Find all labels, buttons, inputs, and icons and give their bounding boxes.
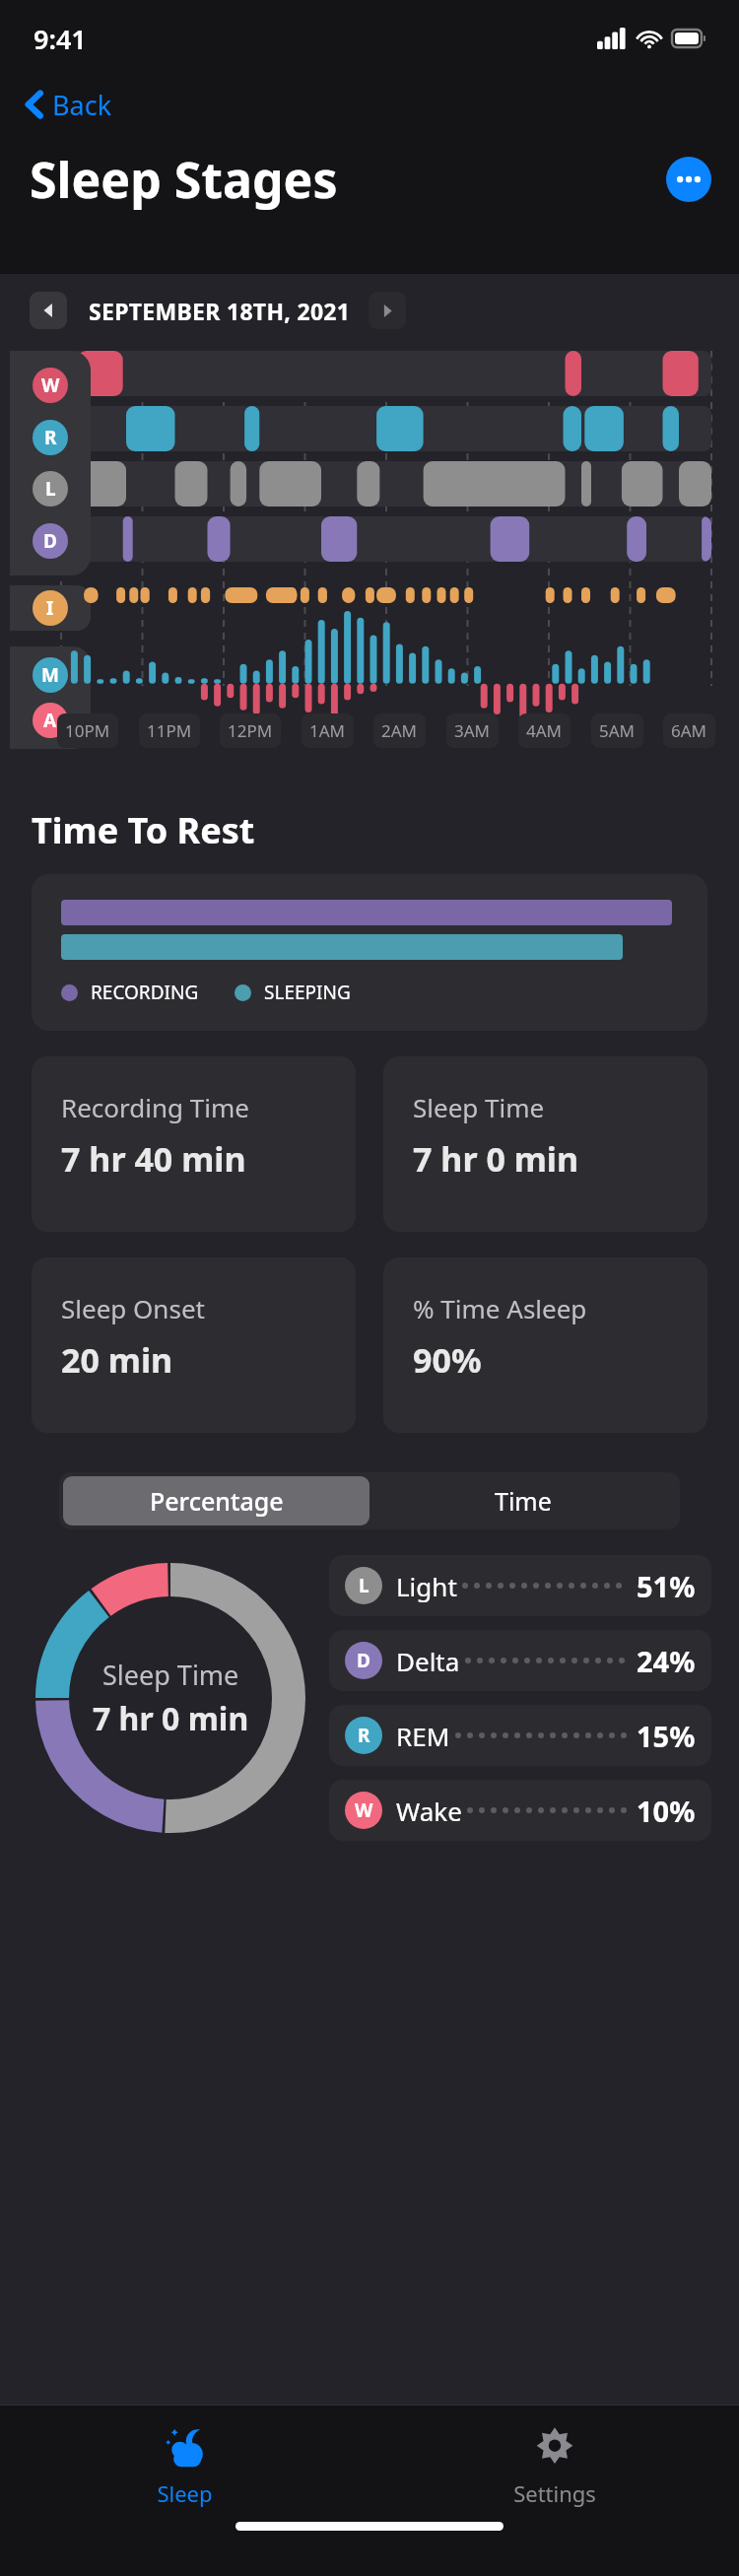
staticText: RECORDING <box>91 980 199 1005</box>
button[interactable]: Sleep Time <box>383 1056 707 1232</box>
button[interactable]: More options <box>666 157 711 202</box>
staticText: Time To Rest <box>32 806 255 854</box>
staticText: L <box>359 1573 369 1598</box>
button[interactable]: Previous day <box>30 292 67 329</box>
button[interactable]: Sleep Onset <box>32 1257 356 1433</box>
button[interactable]: Settings <box>369 2406 739 2522</box>
staticText: SEPTEMBER 18TH, 2021 <box>89 296 351 326</box>
button[interactable]: W <box>329 1780 711 1841</box>
button[interactable]: D <box>329 1630 711 1691</box>
staticText: Wake <box>396 1794 462 1828</box>
staticText: R <box>358 1723 370 1748</box>
staticText: Recording Time <box>61 1090 249 1124</box>
staticText: 24% <box>637 1642 696 1680</box>
staticText: Sleep <box>157 2478 213 2508</box>
staticText: L <box>45 476 56 502</box>
staticText: 10% <box>637 1792 696 1830</box>
button[interactable]: L <box>329 1555 711 1616</box>
staticText: 7 hr 40 min <box>61 1136 246 1182</box>
staticText: Light <box>396 1569 457 1603</box>
staticText: 20 min <box>61 1337 173 1383</box>
staticText: A <box>43 708 57 733</box>
staticText: 6AM <box>671 719 707 742</box>
staticText: Sleep Time <box>102 1657 239 1693</box>
staticText: SLEEPING <box>264 980 351 1005</box>
staticText: Back <box>52 87 112 123</box>
staticText: Percentage <box>150 1484 284 1518</box>
staticText: I <box>46 595 54 621</box>
staticText: M <box>41 662 59 688</box>
button[interactable]: Time <box>369 1476 676 1525</box>
staticText: Delta <box>396 1644 460 1678</box>
button[interactable]: % Time Asleep <box>383 1257 707 1433</box>
staticText: Settings <box>513 2478 596 2508</box>
staticText: 12PM <box>228 719 273 742</box>
staticText: 2AM <box>381 719 418 742</box>
staticText: 4AM <box>526 719 563 742</box>
staticText: D <box>43 528 57 554</box>
button[interactable]: Sleep <box>0 2406 369 2522</box>
staticText: 7 hr 0 min <box>93 1697 249 1740</box>
button[interactable]: Next day <box>369 292 406 329</box>
staticText: 9:41 <box>34 21 87 57</box>
staticText: 7 hr 0 min <box>413 1136 579 1182</box>
staticText: 3AM <box>454 719 491 742</box>
staticText: 1AM <box>309 719 346 742</box>
button[interactable]: Recording Time <box>32 1056 356 1232</box>
staticText: R <box>44 425 57 450</box>
button[interactable]: Back <box>18 77 120 132</box>
staticText: % Time Asleep <box>413 1291 587 1325</box>
staticText: Time <box>495 1484 552 1518</box>
staticText: W <box>355 1797 373 1823</box>
staticText: REM <box>396 1719 450 1753</box>
staticText: 11PM <box>147 719 192 742</box>
staticText: W <box>41 373 60 398</box>
staticText: 90% <box>413 1337 482 1383</box>
staticText: 10PM <box>65 719 110 742</box>
staticText: Sleep Onset <box>61 1291 205 1325</box>
button[interactable]: RECORDING <box>32 874 707 1031</box>
staticText: 15% <box>637 1717 696 1755</box>
button[interactable]: R <box>329 1705 711 1766</box>
button[interactable]: Percentage <box>63 1476 369 1525</box>
staticText: D <box>357 1648 370 1673</box>
staticText: 51% <box>637 1567 696 1605</box>
staticText: Sleep Stages <box>30 146 338 213</box>
staticText: 5AM <box>599 719 636 742</box>
staticText: Sleep Time <box>413 1090 545 1124</box>
